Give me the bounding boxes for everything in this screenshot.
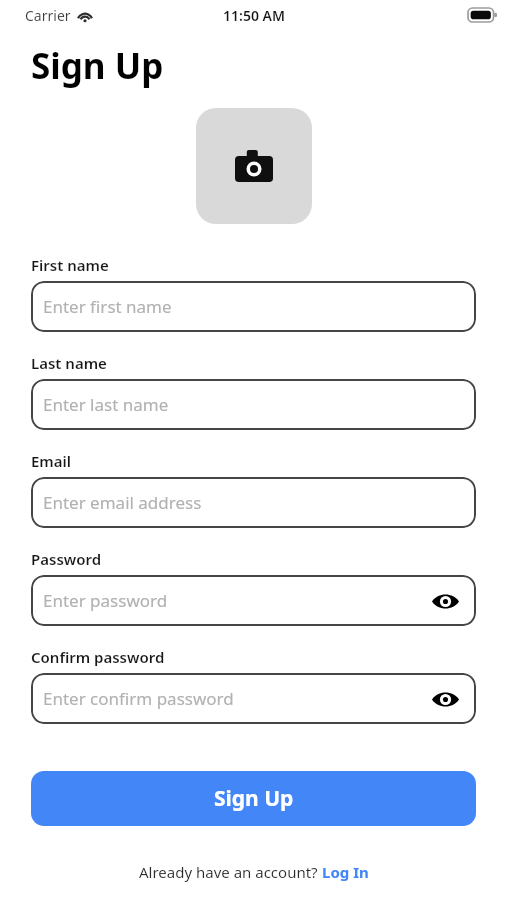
staticText: Enter confirm password (43, 687, 234, 710)
staticText: Sign Up (31, 42, 164, 90)
button[interactable]: Enter password (31, 575, 476, 626)
staticText: Already have an account? (139, 862, 322, 882)
staticText: Last name (31, 353, 107, 373)
button[interactable]: Add profile photo (196, 108, 312, 224)
staticText: Sign Up (214, 784, 294, 813)
staticText: Log In (322, 862, 369, 882)
staticText: Enter email address (43, 491, 202, 514)
staticText: Confirm password (31, 647, 165, 667)
staticText: Password (31, 549, 102, 569)
button[interactable]: Enter email address (31, 477, 476, 528)
button[interactable]: Enter last name (31, 379, 476, 430)
staticText: Enter password (43, 589, 168, 612)
button[interactable]: Enter first name (31, 281, 476, 332)
button[interactable]: Show password (430, 586, 460, 616)
button[interactable]: Enter confirm password (31, 673, 476, 724)
button[interactable]: Show password (430, 684, 460, 714)
staticText: First name (31, 255, 109, 275)
staticText: Carrier (25, 6, 71, 25)
button[interactable]: Already have an account? (139, 862, 369, 882)
button[interactable]: Sign Up (31, 771, 476, 826)
staticText: Email (31, 451, 72, 471)
staticText: Enter last name (43, 393, 169, 416)
staticText: Enter first name (43, 295, 172, 318)
staticText: 11:50 AM (223, 6, 285, 25)
